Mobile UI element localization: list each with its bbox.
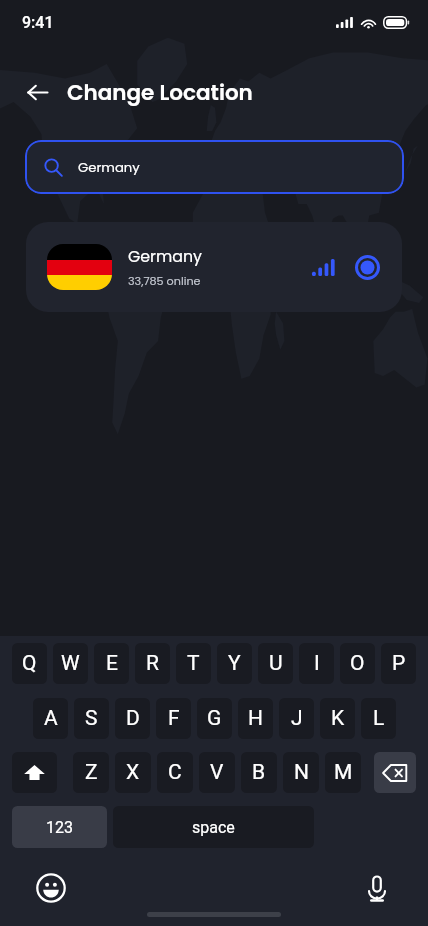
staticText: Germany	[78, 158, 140, 176]
staticText: S	[85, 706, 98, 731]
staticText: space	[192, 818, 235, 837]
staticText: Z	[85, 760, 98, 785]
button[interactable]: P	[381, 643, 416, 684]
button[interactable]: L	[361, 698, 396, 739]
button[interactable]: S	[74, 698, 109, 739]
button[interactable]: Shift	[12, 752, 57, 793]
button[interactable]: R	[135, 643, 170, 684]
button[interactable]: Voice input	[357, 868, 397, 908]
staticText: N	[294, 760, 309, 785]
staticText: U	[269, 651, 283, 676]
button[interactable]: E	[94, 643, 129, 684]
button[interactable]: I	[299, 643, 334, 684]
button[interactable]: Germany	[25, 140, 404, 194]
button[interactable]: Backspace	[374, 752, 416, 793]
staticText: 123	[46, 818, 73, 837]
button[interactable]: K	[320, 698, 355, 739]
staticText: V	[210, 760, 224, 785]
button[interactable]: C	[157, 752, 193, 793]
button[interactable]: A	[33, 698, 68, 739]
staticText: 33,785 online	[128, 273, 201, 289]
button[interactable]: F	[156, 698, 191, 739]
staticText: Q	[22, 651, 37, 676]
button[interactable]: M	[325, 752, 361, 793]
staticText: E	[106, 651, 118, 676]
staticText: W	[61, 651, 80, 676]
button[interactable]: H	[238, 698, 273, 739]
staticText: B	[252, 760, 266, 785]
button[interactable]: 123	[12, 806, 107, 848]
staticText: X	[126, 760, 140, 785]
staticText: 9:41	[22, 13, 54, 32]
button[interactable]: X	[115, 752, 151, 793]
staticText: C	[168, 760, 182, 785]
staticText: H	[248, 706, 263, 731]
staticText: D	[126, 706, 140, 731]
button[interactable]: O	[340, 643, 375, 684]
button[interactable]: Y	[217, 643, 252, 684]
button[interactable]: V	[199, 752, 235, 793]
staticText: M	[334, 760, 353, 785]
staticText: Change Location	[67, 77, 253, 107]
staticText: R	[146, 651, 159, 676]
button[interactable]: G	[197, 698, 232, 739]
button[interactable]: Z	[73, 752, 109, 793]
button[interactable]: Germany selected	[352, 252, 382, 282]
staticText: F	[168, 706, 180, 731]
staticText: G	[207, 706, 222, 731]
button[interactable]: J	[279, 698, 314, 739]
button[interactable]: Emoji	[31, 868, 71, 908]
staticText: Germany	[128, 245, 202, 267]
staticText: T	[187, 651, 200, 676]
staticText: A	[44, 706, 58, 731]
staticText: J	[291, 706, 303, 731]
button[interactable]: T	[176, 643, 211, 684]
button[interactable]: N	[283, 752, 319, 793]
button[interactable]: D	[115, 698, 150, 739]
button[interactable]: Q	[12, 643, 47, 684]
button[interactable]: Germany	[26, 222, 402, 312]
staticText: K	[331, 706, 345, 731]
staticText: Y	[228, 651, 241, 676]
button[interactable]: W	[53, 643, 88, 684]
staticText: P	[392, 651, 406, 676]
staticText: O	[350, 651, 365, 676]
button[interactable]: space	[113, 806, 314, 848]
button[interactable]: U	[258, 643, 293, 684]
button[interactable]: B	[241, 752, 277, 793]
staticText: L	[373, 706, 385, 731]
staticText: I	[314, 651, 320, 676]
button[interactable]: Back	[16, 71, 58, 113]
